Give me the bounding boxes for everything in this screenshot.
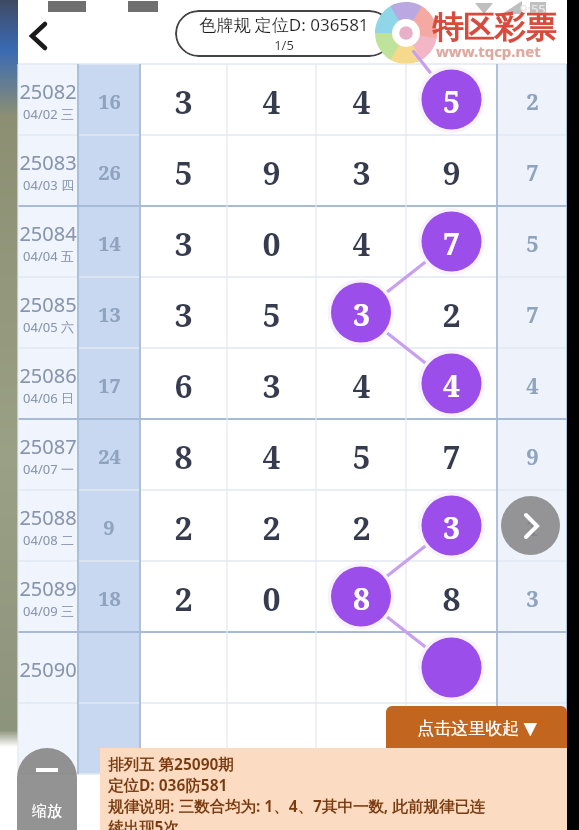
- staticText: 04/03 四: [23, 176, 74, 194]
- staticText: 7: [526, 299, 539, 329]
- staticText: 4: [526, 370, 539, 400]
- staticText: 9: [103, 514, 115, 541]
- staticText: 14: [98, 230, 121, 257]
- staticText: 25087: [19, 433, 77, 460]
- staticText: 5: [526, 228, 539, 258]
- staticText: 7: [443, 223, 460, 264]
- staticText: 2: [352, 506, 371, 548]
- staticText: 4: [262, 435, 281, 477]
- staticText: 25086: [19, 362, 77, 389]
- staticText: 5: [443, 81, 460, 122]
- staticText: 3: [174, 222, 193, 264]
- staticText: 特区彩票网: [432, 8, 579, 44]
- staticText: 16: [98, 88, 121, 115]
- staticText: 8: [174, 435, 193, 477]
- staticText: 04/08 二: [23, 531, 74, 549]
- staticText: 3: [353, 294, 370, 335]
- staticText: 13: [98, 301, 121, 328]
- staticText: 规律说明: 三数合均为: 1、4、7其中一数, 此前规律已连: [108, 795, 486, 816]
- staticText: 04/07 一: [23, 460, 74, 478]
- staticText: 26: [98, 159, 121, 186]
- staticText: 8: [442, 577, 461, 619]
- staticText: 04/06 日: [23, 389, 74, 407]
- staticText: 7: [526, 157, 539, 187]
- staticText: 25089: [19, 575, 77, 602]
- staticText: 5: [262, 293, 281, 335]
- staticText: 9:55: [520, 0, 546, 17]
- button[interactable]: 点击这里收起 ▼: [386, 706, 567, 748]
- staticText: 25084: [19, 220, 77, 247]
- button[interactable]: 色牌规 定位D: 036581: [175, 10, 393, 57]
- staticText: 3: [174, 80, 193, 122]
- staticText: 1: [526, 512, 539, 542]
- staticText: 1/5: [274, 36, 294, 54]
- button[interactable]: Zoom: [17, 748, 77, 830]
- staticText: 2: [174, 506, 193, 548]
- staticText: 5: [352, 435, 371, 477]
- staticText: 定位D: 036防581: [108, 774, 228, 795]
- staticText: 续出现5次: [108, 816, 179, 830]
- staticText: 3: [352, 151, 371, 193]
- staticText: 4: [352, 364, 371, 406]
- staticText: 9: [262, 151, 281, 193]
- staticText: 排列五 第25090期: [108, 753, 234, 774]
- button[interactable]: 排列五 第25090期: [100, 748, 567, 830]
- staticText: 2: [262, 506, 281, 548]
- staticText: 4: [352, 80, 371, 122]
- staticText: 2: [442, 293, 461, 335]
- staticText: 5: [174, 151, 193, 193]
- staticText: 25085: [19, 291, 77, 318]
- staticText: 点击这里收起 ▼: [417, 716, 537, 739]
- staticText: 7: [442, 435, 461, 477]
- staticText: 8: [353, 578, 370, 619]
- staticText: 9: [526, 441, 539, 471]
- staticText: 25090: [19, 656, 77, 683]
- button[interactable]: Back: [16, 14, 60, 58]
- staticText: 6: [174, 364, 193, 406]
- staticText: 24: [98, 443, 121, 470]
- staticText: 18: [98, 585, 121, 612]
- staticText: 4: [443, 365, 460, 406]
- staticText: 0: [262, 222, 281, 264]
- staticText: 25082: [19, 78, 77, 105]
- staticText: 缩放: [32, 802, 62, 821]
- staticText: 0: [262, 577, 281, 619]
- staticText: 4: [262, 80, 281, 122]
- staticText: 04/05 六: [23, 318, 74, 336]
- staticText: 3: [443, 507, 460, 548]
- staticText: 色牌规 定位D: 036581: [199, 13, 369, 36]
- staticText: 25088: [19, 504, 77, 531]
- staticText: 3: [526, 583, 539, 613]
- staticText: 3: [174, 293, 193, 335]
- staticText: 17: [98, 372, 121, 399]
- staticText: 04/04 五: [23, 247, 74, 265]
- button[interactable]: Next page: [501, 496, 560, 555]
- staticText: www.tqcp.net: [436, 41, 541, 61]
- staticText: 2: [526, 86, 539, 116]
- staticText: 04/09 三: [23, 602, 74, 620]
- staticText: 04/02 三: [23, 105, 74, 123]
- staticText: 9: [442, 151, 461, 193]
- staticText: 2: [174, 577, 193, 619]
- staticText: 3: [262, 364, 281, 406]
- staticText: 25083: [19, 149, 77, 176]
- staticText: 4: [352, 222, 371, 264]
